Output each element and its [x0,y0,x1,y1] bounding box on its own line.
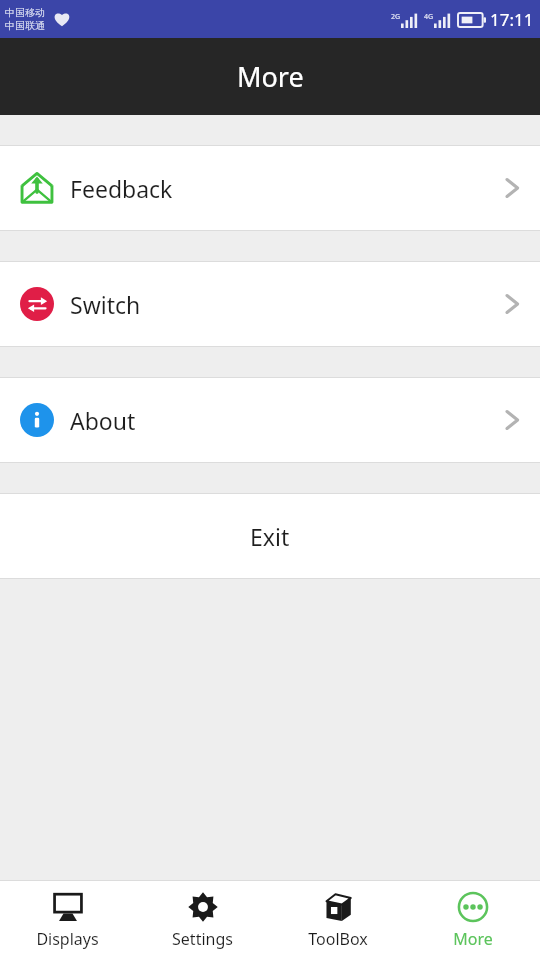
staticText: 2G [391,12,401,22]
staticText: Settings [172,928,233,950]
staticText: Switch [70,289,141,320]
staticText: 中国移动 [5,6,45,19]
button[interactable]: Settings [135,883,270,958]
button[interactable]: Switch [0,262,540,346]
button[interactable]: Displays [0,883,135,958]
staticText: ToolBox [308,928,368,950]
other: ToolBox [322,891,354,923]
other: Displays [52,891,84,923]
other: Settings [187,891,219,923]
other: More [457,891,489,923]
staticText: Displays [36,928,99,950]
staticText: 中国联通 [5,19,45,32]
staticText: 4G [424,12,434,22]
button[interactable]: Exit [0,494,540,578]
staticText: Feedback [70,173,173,204]
staticText: More [453,928,493,950]
staticText: About [70,405,136,436]
staticText: 17:11 [490,8,534,31]
staticText: Exit [250,521,290,552]
button[interactable]: More [405,883,540,958]
staticText: More [237,58,304,95]
button[interactable]: Feedback [0,146,540,230]
button[interactable]: About [0,378,540,462]
button[interactable]: ToolBox [270,883,405,958]
